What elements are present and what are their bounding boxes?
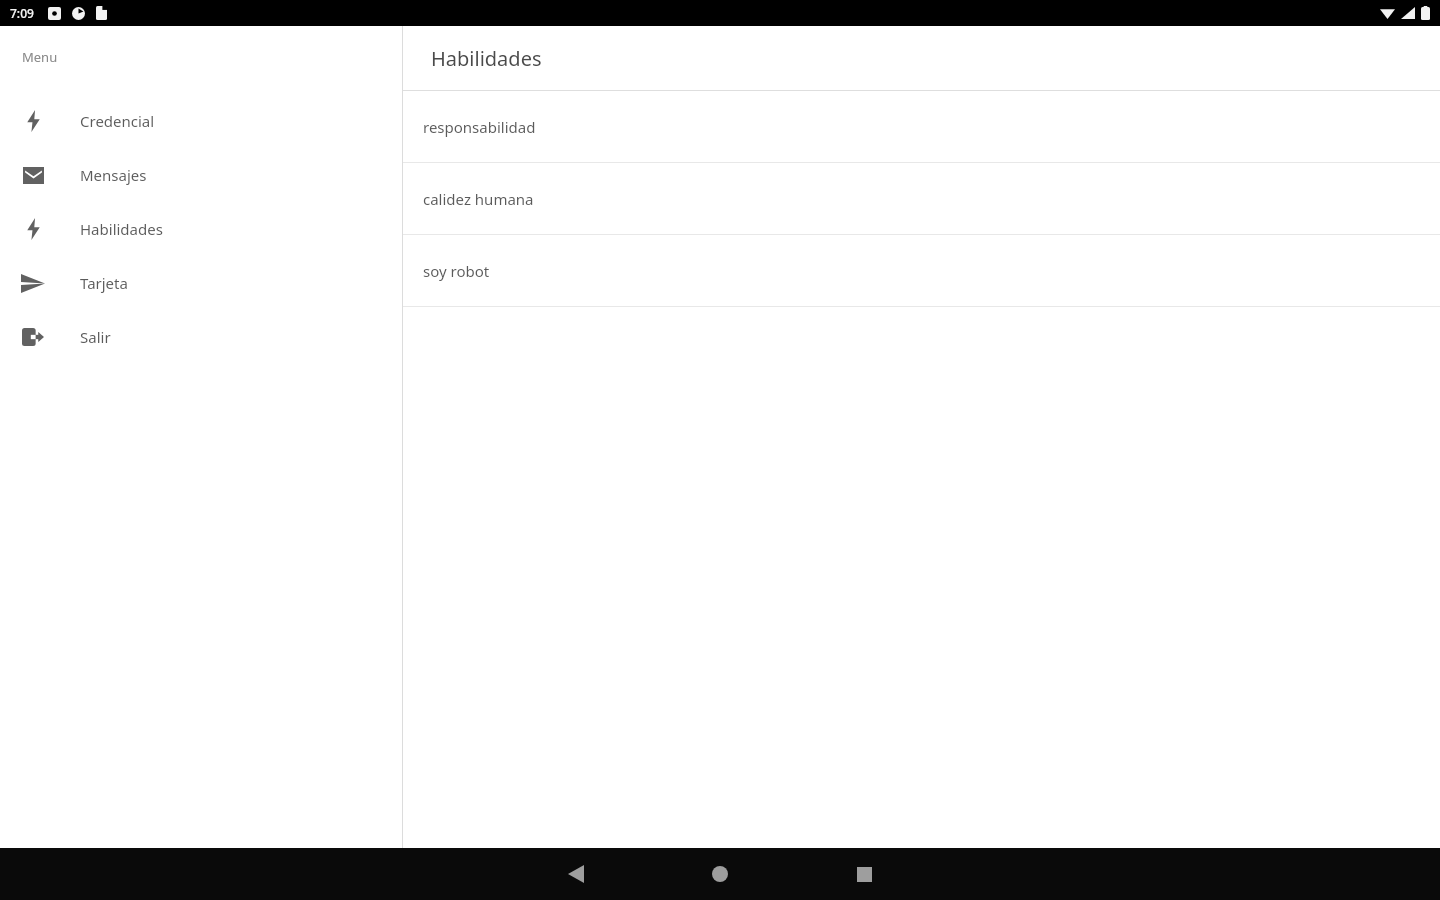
staticText: Habilidades — [431, 45, 542, 72]
button[interactable]: Habilidades — [0, 202, 402, 256]
staticText: Habilidades — [80, 219, 163, 239]
staticText: Menu — [22, 48, 58, 66]
staticText: responsabilidad — [423, 117, 536, 137]
button[interactable]: responsabilidad — [403, 91, 1440, 163]
button[interactable]: Back — [504, 848, 648, 900]
button[interactable]: soy robot — [403, 235, 1440, 307]
staticText: Mensajes — [80, 165, 147, 185]
staticText: 7:09 — [10, 5, 34, 21]
staticText: Tarjeta — [80, 273, 128, 293]
button[interactable]: Home — [648, 848, 792, 900]
staticText: Salir — [80, 327, 111, 347]
staticText: soy robot — [423, 261, 490, 281]
button[interactable]: calidez humana — [403, 163, 1440, 235]
staticText: Credencial — [80, 111, 155, 131]
button[interactable]: Tarjeta — [0, 256, 402, 310]
button[interactable]: Mensajes — [0, 148, 402, 202]
staticText: calidez humana — [423, 189, 534, 209]
button[interactable]: Credencial — [0, 94, 402, 148]
button[interactable]: Recent apps — [792, 848, 936, 900]
button[interactable]: Salir — [0, 310, 402, 364]
